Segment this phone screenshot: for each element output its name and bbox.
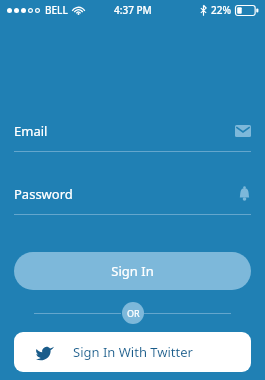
staticText: 4:37 PM bbox=[114, 3, 152, 17]
button[interactable]: Sign In bbox=[14, 252, 251, 290]
staticText: Email bbox=[14, 122, 48, 140]
button[interactable]: Sign In With Twitter bbox=[14, 332, 251, 372]
staticText: Sign In bbox=[111, 262, 154, 280]
staticText: BELL bbox=[45, 3, 68, 17]
staticText: Sign In With Twitter bbox=[73, 343, 193, 361]
staticText: Password bbox=[14, 185, 73, 203]
staticText: OR bbox=[127, 307, 140, 319]
staticText: 22% bbox=[211, 3, 231, 17]
